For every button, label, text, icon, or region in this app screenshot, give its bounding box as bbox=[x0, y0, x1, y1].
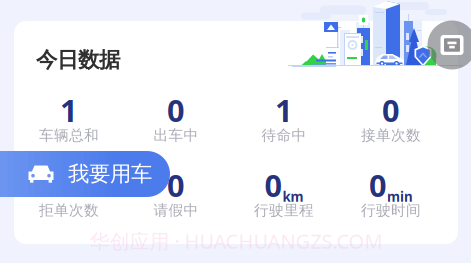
staticText: 今日数据 bbox=[36, 47, 120, 73]
button[interactable]: 我要用车 bbox=[0, 151, 170, 197]
staticText: 行驶时间 bbox=[361, 201, 421, 219]
staticText: 0 bbox=[264, 165, 282, 205]
staticText: 0 bbox=[167, 90, 185, 130]
staticText: 出车中 bbox=[153, 126, 198, 144]
staticText: 0 bbox=[167, 165, 185, 205]
button[interactable]: 订单记录 bbox=[427, 20, 471, 69]
staticText: 车辆总和 bbox=[39, 126, 99, 144]
staticText: 0 bbox=[382, 90, 400, 130]
staticText: min bbox=[387, 188, 413, 205]
staticText: 接单次数 bbox=[361, 126, 421, 144]
staticText: 0 bbox=[369, 165, 387, 205]
staticText: 0 bbox=[60, 165, 78, 205]
staticText: 我要用车 bbox=[68, 161, 152, 187]
staticText: 待命中 bbox=[261, 126, 306, 144]
staticText: 拒单次数 bbox=[39, 201, 99, 219]
staticText: 华创应用 · HUACHUANGZS.COM bbox=[89, 228, 382, 254]
staticText: 请假中 bbox=[153, 201, 198, 219]
staticText: 行驶里程 bbox=[254, 201, 314, 219]
staticText: 1 bbox=[60, 90, 78, 130]
staticText: km bbox=[282, 188, 303, 205]
staticText: 1 bbox=[275, 90, 293, 130]
